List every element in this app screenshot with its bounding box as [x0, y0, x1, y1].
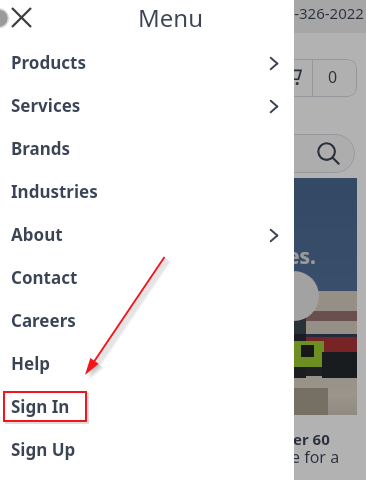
staticText: Help	[11, 352, 50, 375]
staticText: 0	[328, 66, 338, 88]
staticText: 1-800-326-2022	[255, 3, 364, 23]
staticText: Careers	[11, 309, 76, 332]
staticText: e for a	[291, 446, 340, 468]
staticText: Services	[11, 94, 81, 117]
staticText: Contact	[11, 266, 78, 289]
button[interactable]: Careers	[0, 299, 294, 342]
button[interactable]: About	[0, 213, 294, 256]
staticText: About	[11, 223, 63, 246]
button[interactable]: Sign In	[0, 385, 294, 428]
button[interactable]: Contact	[0, 256, 294, 299]
button[interactable]: Close menu	[3, 0, 39, 35]
staticText: Sign In	[11, 395, 70, 418]
staticText: Products	[11, 51, 86, 74]
button[interactable]: Industries	[0, 170, 294, 213]
staticText: es.	[287, 242, 316, 271]
staticText: Brands	[11, 137, 71, 160]
button[interactable]: Help	[0, 342, 294, 385]
staticText: Sign In	[11, 395, 70, 418]
button[interactable]: Products	[0, 41, 294, 84]
staticText: er 60	[293, 429, 330, 449]
button[interactable]: Services	[0, 84, 294, 127]
button[interactable]: Sign Up	[0, 428, 294, 471]
button[interactable]: Cart	[252, 59, 357, 97]
button[interactable]: Brands	[0, 127, 294, 170]
staticText: Sign Up	[11, 438, 76, 461]
staticText: Menu	[138, 1, 203, 34]
staticText: Industries	[11, 180, 98, 203]
button[interactable]: Search	[120, 134, 355, 173]
